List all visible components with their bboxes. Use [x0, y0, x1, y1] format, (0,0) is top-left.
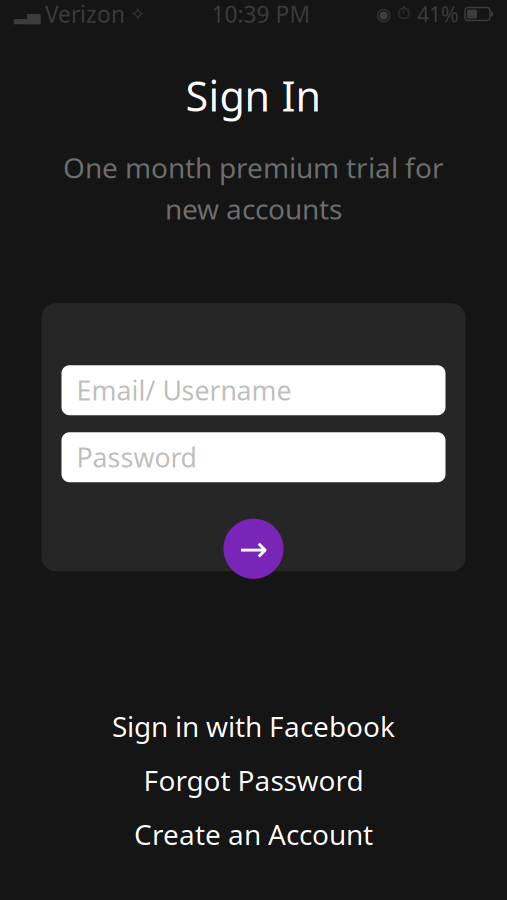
- staticText: ⏱: [397, 5, 411, 22]
- staticText: Sign in with Facebook: [112, 708, 395, 745]
- staticText: One month premium trial for: [63, 149, 444, 186]
- button[interactable]: Forgot Password: [53, 753, 453, 807]
- staticText: Forgot Password: [143, 762, 363, 799]
- staticText: ▂▄: [14, 4, 40, 24]
- staticText: new accounts: [165, 190, 342, 227]
- staticText: ✧: [130, 3, 146, 25]
- button[interactable]: Sign In: [223, 519, 283, 579]
- button[interactable]: Create an Account: [53, 807, 453, 861]
- staticText: →: [239, 529, 268, 568]
- staticText: Create an Account: [134, 816, 373, 853]
- staticText: Email/ Username: [76, 372, 291, 408]
- staticText: ◉: [376, 4, 391, 24]
- staticText: Password: [76, 439, 196, 475]
- staticText: 10:39 PM: [211, 0, 310, 29]
- staticText: Sign In: [185, 68, 321, 123]
- button[interactable]: Sign in with Facebook: [53, 699, 453, 753]
- staticText: Verizon: [45, 0, 125, 29]
- staticText: 41%: [417, 0, 459, 28]
